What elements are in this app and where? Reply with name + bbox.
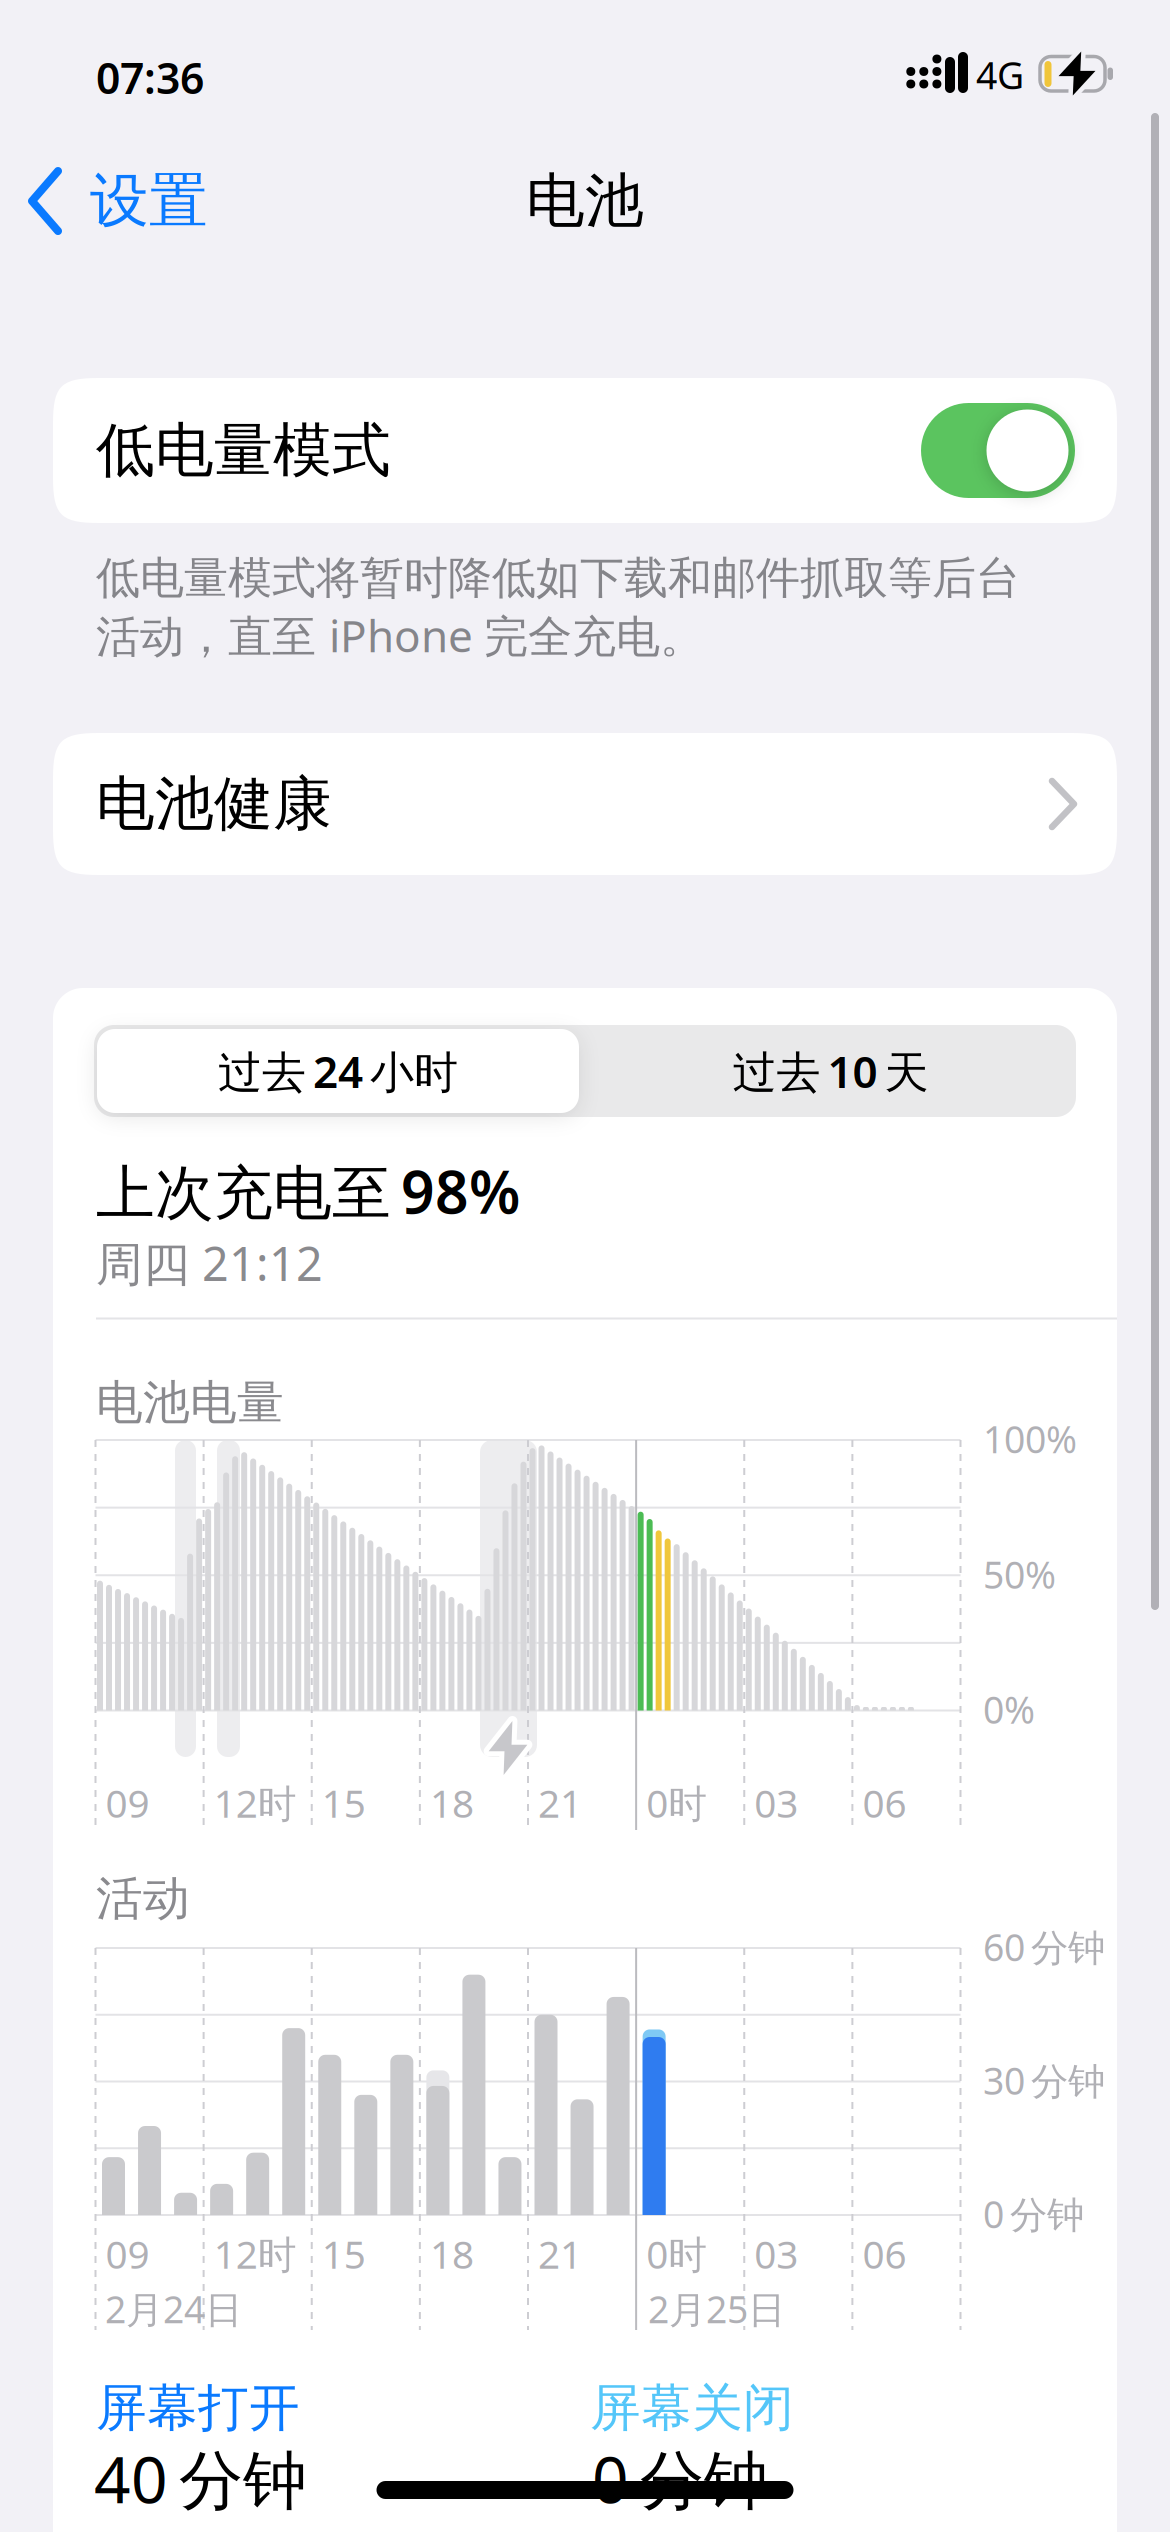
staticText: 06 xyxy=(862,1777,906,1828)
staticText: 电池 xyxy=(526,165,644,237)
staticText: 60 分钟 xyxy=(983,1922,1105,1972)
staticText: 40 分钟 xyxy=(94,2436,307,2521)
staticText: 30 分钟 xyxy=(983,2055,1105,2105)
staticText: 屏幕打开 xyxy=(96,2377,300,2439)
staticText: 09 xyxy=(105,1777,149,1828)
staticText: 周四 21:12 xyxy=(96,1232,323,1294)
staticText: 低电量模式将暂时降低如下载和邮件抓取等后台 xyxy=(96,551,1020,605)
staticText: 0时 xyxy=(646,1777,707,1828)
staticText: 0时 xyxy=(646,2228,707,2279)
staticText: 18 xyxy=(430,2228,474,2279)
staticText: 屏幕关闭 xyxy=(590,2377,794,2439)
button[interactable]: 过去 24 小时 xyxy=(97,1029,579,1113)
staticText: 12时 xyxy=(214,2228,297,2279)
staticText: 过去 24 小时 xyxy=(218,1042,458,1100)
staticText: 活动，直至 iPhone 完全充电。 xyxy=(96,606,704,664)
staticText: 0% xyxy=(983,1684,1035,1734)
staticText: 4G xyxy=(976,50,1024,100)
staticText: 15 xyxy=(322,1777,366,1828)
staticText: 21 xyxy=(538,2228,582,2279)
staticText: 12时 xyxy=(214,1777,297,1828)
staticText: 电池电量 xyxy=(96,1374,284,1431)
staticText: 18 xyxy=(430,1777,474,1828)
staticText: 设置 xyxy=(90,165,208,237)
staticText: 低电量模式 xyxy=(96,414,391,487)
staticText: 21 xyxy=(538,1777,582,1828)
staticText: 100% xyxy=(983,1414,1077,1464)
staticText: 0 分钟 xyxy=(983,2189,1084,2239)
button[interactable]: 低电量模式 xyxy=(53,378,1117,523)
button[interactable]: 电池健康 xyxy=(53,733,1117,875)
staticText: 03 xyxy=(754,2228,798,2279)
staticText: 活动 xyxy=(96,1870,190,1927)
button[interactable]: 设置 xyxy=(27,165,208,237)
button[interactable]: 过去 10 天 xyxy=(585,1025,1076,1117)
staticText: 09 xyxy=(105,2228,149,2279)
staticText: 50% xyxy=(983,1549,1056,1599)
staticText: 0 分钟 xyxy=(592,2436,768,2521)
staticText: 15 xyxy=(322,2228,366,2279)
staticText: 上次充电至 98% xyxy=(96,1152,520,1230)
staticText: 过去 10 天 xyxy=(732,1042,928,1100)
staticText: 06 xyxy=(862,2228,906,2279)
staticText: 03 xyxy=(754,1777,798,1828)
staticText: 07:36 xyxy=(96,49,204,106)
staticText: 2月24日 xyxy=(105,2284,242,2334)
staticText: 2月25日 xyxy=(648,2284,785,2334)
staticText: 电池健康 xyxy=(96,768,332,840)
